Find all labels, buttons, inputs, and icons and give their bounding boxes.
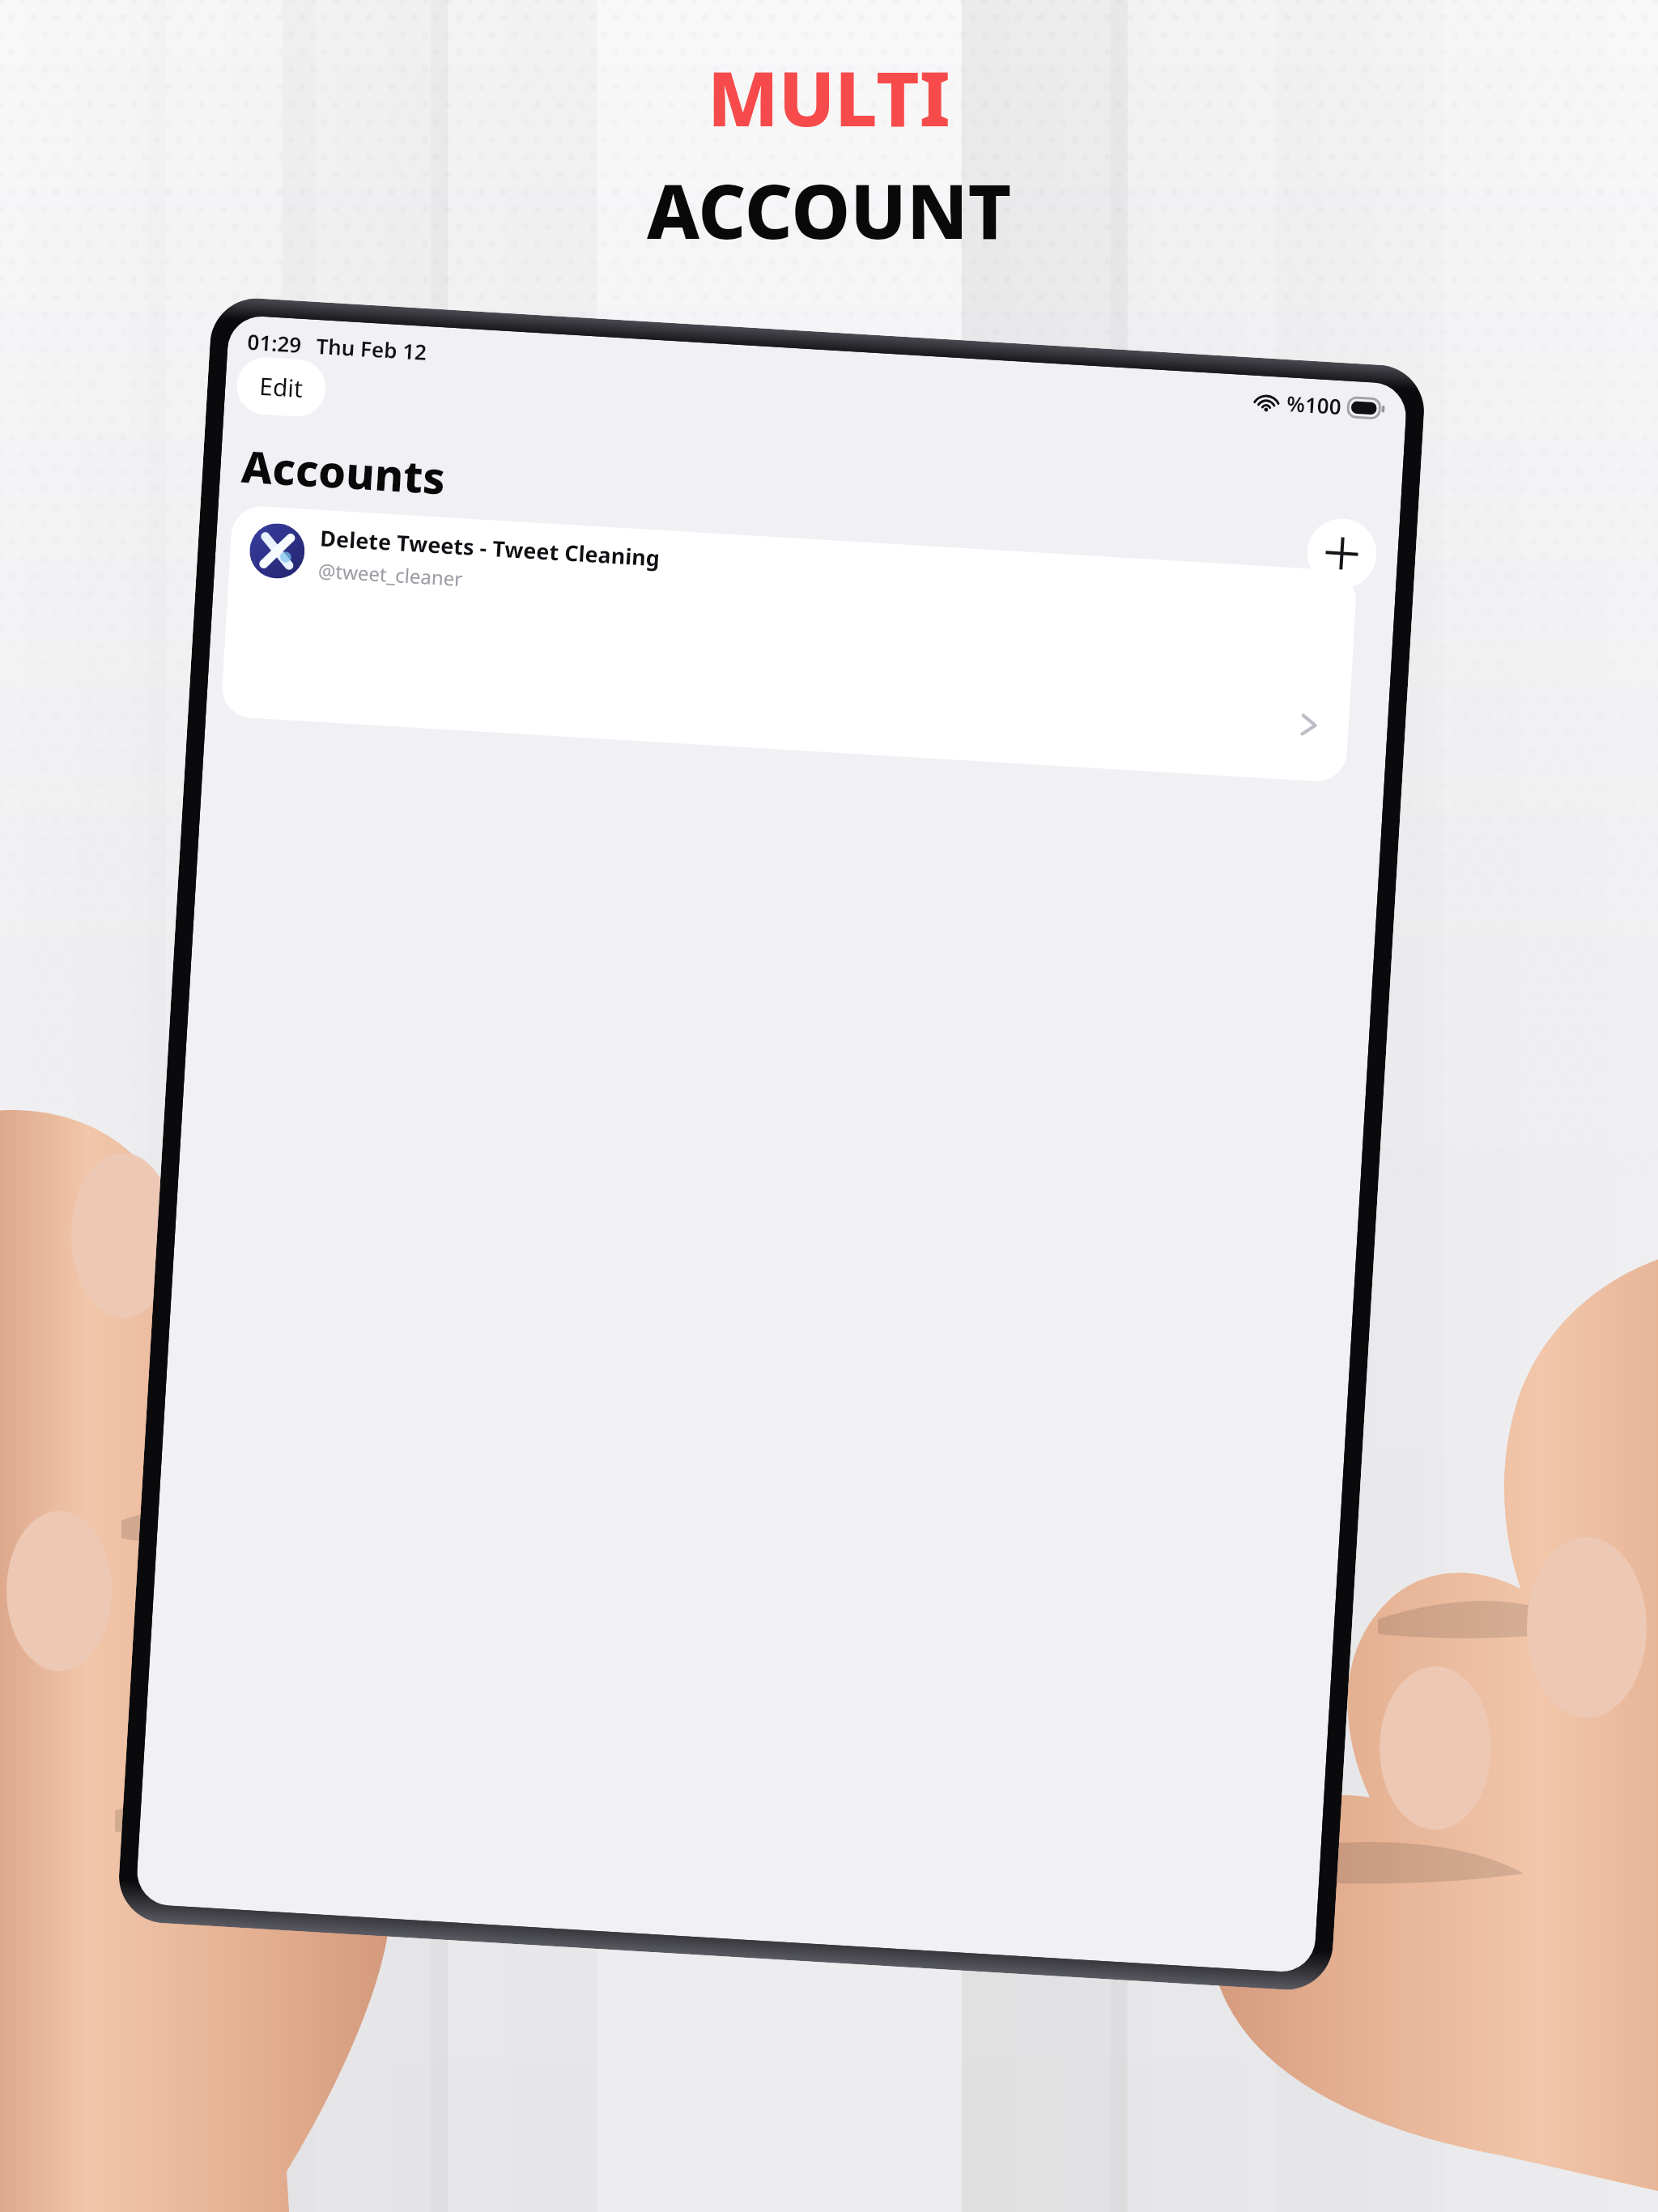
staticText: @tweet_cleaner xyxy=(317,557,464,592)
staticText: 01:29 xyxy=(247,327,302,359)
button[interactable]: Delete Tweets - Tweet Cleaning xyxy=(220,505,1358,783)
staticText: Thu Feb 12 xyxy=(315,331,428,366)
staticText: Accounts xyxy=(240,435,447,507)
staticText: Delete Tweets - Tweet Cleaning xyxy=(319,523,661,573)
button[interactable]: Add account xyxy=(1305,517,1379,590)
staticText: Edit xyxy=(258,369,304,405)
button[interactable]: Edit xyxy=(235,356,327,418)
staticText: MULTI xyxy=(708,47,950,148)
staticText: ACCOUNT xyxy=(647,160,1012,261)
staticText: %100 xyxy=(1286,389,1343,420)
